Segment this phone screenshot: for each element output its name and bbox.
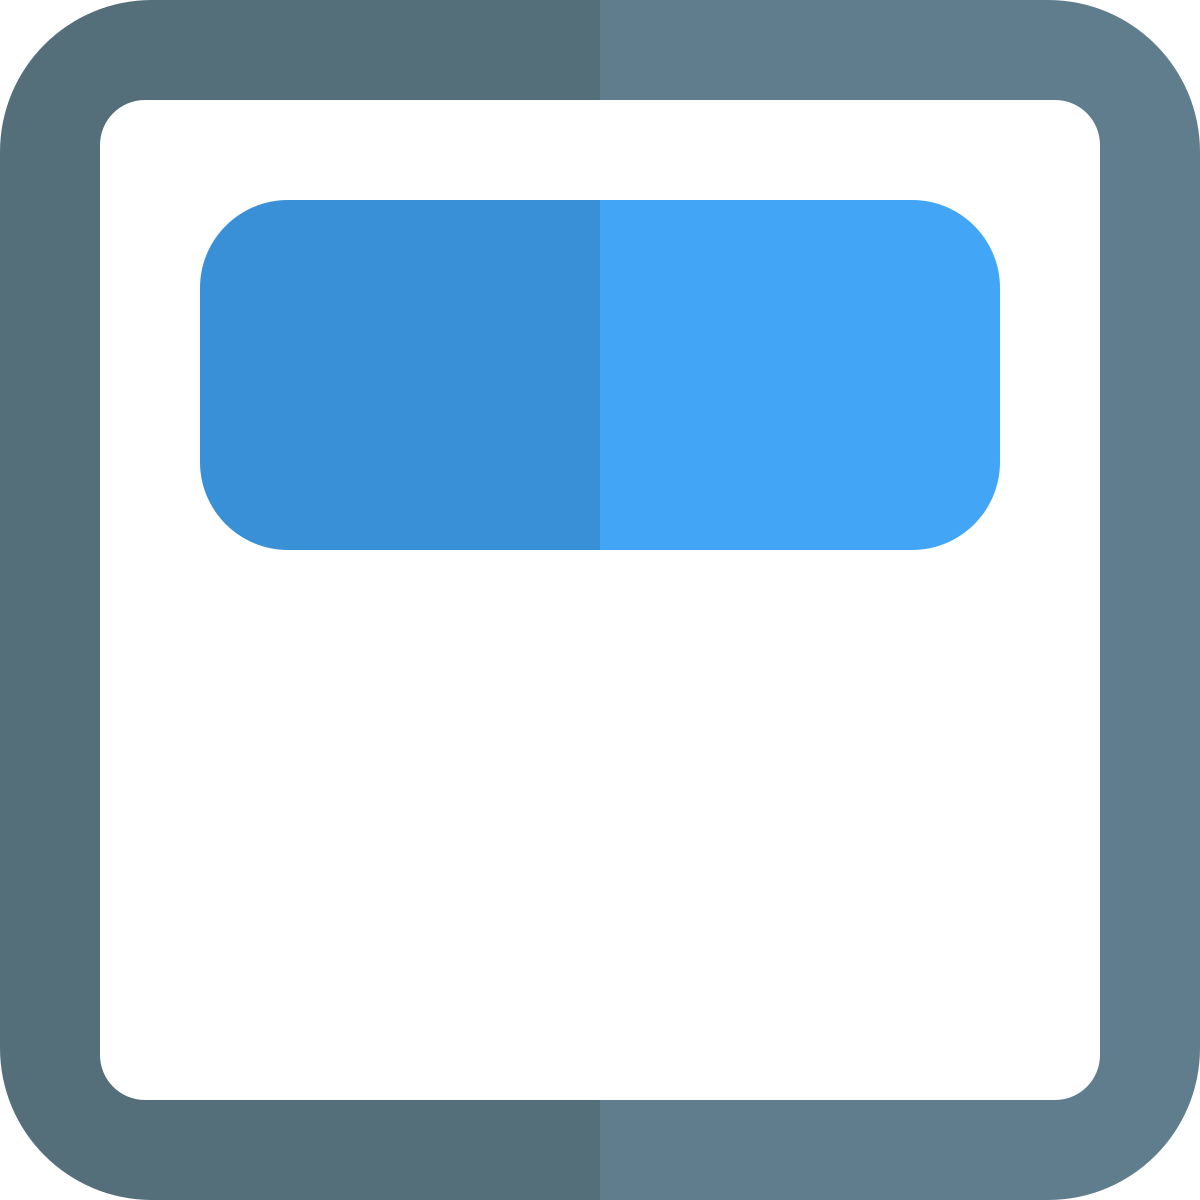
button[interactable]: Selected row — [200, 200, 1000, 550]
